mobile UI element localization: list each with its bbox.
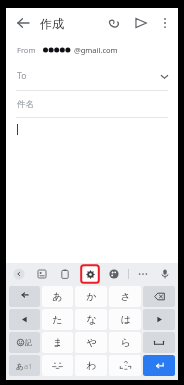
staticText: From xyxy=(17,45,36,55)
button[interactable]: な xyxy=(75,309,107,330)
button[interactable]: Themes xyxy=(106,266,122,282)
staticText: な xyxy=(86,313,97,326)
staticText: は xyxy=(120,313,131,326)
staticText: 記 xyxy=(25,338,32,347)
button[interactable]: Switch input mode xyxy=(9,355,40,376)
staticText: @gmail.com xyxy=(74,45,118,55)
button[interactable]: Cursor left xyxy=(9,309,40,330)
button[interactable]: ま xyxy=(42,332,73,353)
staticText: あ xyxy=(16,362,24,371)
button[interactable]: Kaomoji xyxy=(42,355,73,376)
staticText: 件名 xyxy=(17,99,34,110)
staticText: ま xyxy=(52,336,63,349)
button[interactable]: Delete xyxy=(143,286,175,307)
staticText: た xyxy=(52,313,63,326)
button[interactable]: わ xyxy=(75,355,107,376)
button[interactable]: ら xyxy=(109,332,141,353)
button[interactable]: More options xyxy=(156,14,174,32)
button[interactable]: Clipboard xyxy=(57,266,73,282)
button[interactable]: More xyxy=(135,266,151,282)
button[interactable]: は xyxy=(109,309,141,330)
button[interactable]: た xyxy=(42,309,73,330)
button[interactable]: Back xyxy=(11,266,27,282)
button[interactable]: Emoji and symbols xyxy=(9,332,40,353)
button[interactable]: Undo xyxy=(9,286,40,307)
staticText: や xyxy=(86,336,97,349)
button[interactable]: さ xyxy=(109,286,141,307)
button[interactable]: Attach file xyxy=(102,12,124,34)
button[interactable]: Settings xyxy=(80,264,100,284)
button[interactable]: あ xyxy=(42,286,73,307)
button[interactable]: Send xyxy=(130,12,152,34)
button[interactable]: Space xyxy=(143,332,175,353)
button[interactable]: Back xyxy=(12,12,34,34)
staticText: To xyxy=(17,70,27,82)
staticText: あ xyxy=(52,290,63,303)
staticText: わ xyxy=(86,359,97,372)
button[interactable]: Punctuation xyxy=(109,355,141,376)
button[interactable]: Voice input xyxy=(157,266,173,282)
button[interactable]: や xyxy=(75,332,107,353)
staticText: か xyxy=(86,290,97,303)
button[interactable]: Cursor right xyxy=(143,309,175,330)
button[interactable]: Enter xyxy=(143,355,175,376)
staticText: さ xyxy=(120,290,131,303)
staticText: a1 xyxy=(24,361,33,371)
staticText: ら xyxy=(120,336,131,349)
button[interactable]: To xyxy=(6,62,178,90)
button[interactable]: From xyxy=(6,38,178,62)
button[interactable]: 件名 xyxy=(6,91,178,117)
button[interactable]: か xyxy=(75,286,107,307)
button[interactable]: Stickers xyxy=(34,266,50,282)
staticText: 作成 xyxy=(40,16,64,31)
